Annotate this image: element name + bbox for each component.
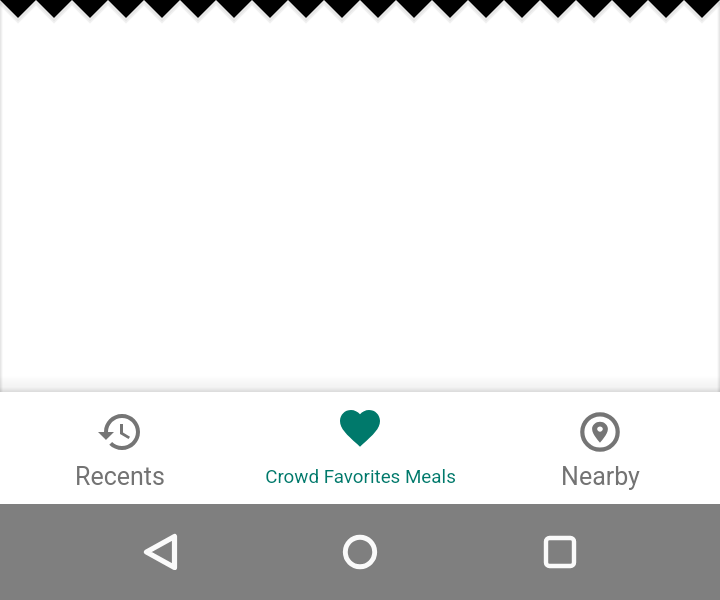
button[interactable]: Recents — [0, 392, 240, 504]
button[interactable]: Nearby — [480, 392, 720, 504]
button[interactable]: Overview — [520, 512, 600, 592]
button[interactable]: Home — [320, 512, 400, 592]
button[interactable]: Back — [120, 512, 200, 592]
button[interactable]: Crowd Favorites Meals — [240, 392, 480, 504]
staticText: Recents — [75, 462, 165, 491]
staticText: Nearby — [561, 462, 640, 491]
staticText: Crowd Favorites Meals — [265, 466, 456, 488]
